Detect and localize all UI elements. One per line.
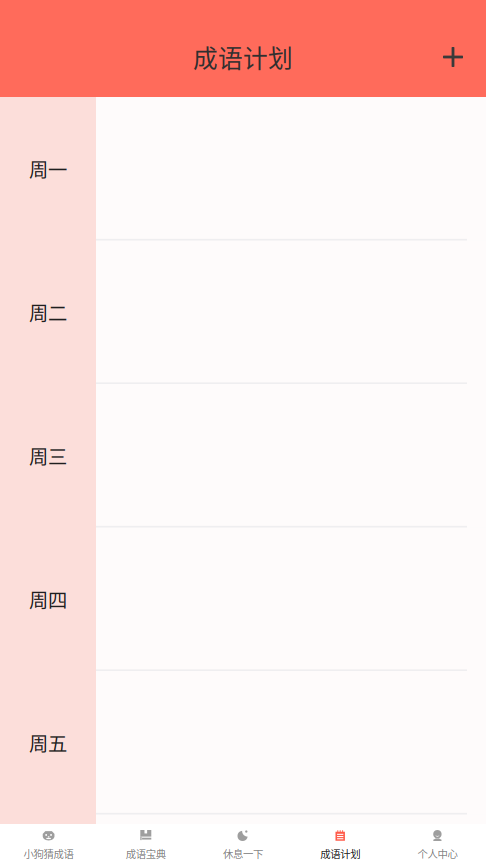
staticText: 周一 [29,155,67,183]
staticText: 周四 [29,585,67,613]
button[interactable]: 周二 [0,240,96,384]
button[interactable]: 休息一下 [194,824,292,861]
staticText: 周二 [29,298,67,326]
button[interactable]: 周四 [0,527,96,671]
staticText: 成语宝典 [126,846,166,861]
staticText: 成语计划 [193,39,293,75]
button[interactable]: 成语计划 [292,824,389,861]
button[interactable]: 周五 [0,671,96,814]
button[interactable]: 周三 [0,384,96,527]
staticText: 成语计划 [320,846,360,861]
staticText: 个人中心 [417,846,457,861]
button[interactable]: 个人中心 [389,824,486,861]
staticText: 小狗猜成语 [24,846,74,861]
staticText: 周三 [29,442,67,470]
button[interactable]: 小狗猜成语 [0,824,97,861]
button[interactable]: 成语宝典 [97,824,194,861]
staticText: 周五 [29,729,67,757]
button[interactable]: Add plan [431,35,475,79]
button[interactable]: 周一 [0,97,96,240]
staticText: 休息一下 [223,846,263,861]
